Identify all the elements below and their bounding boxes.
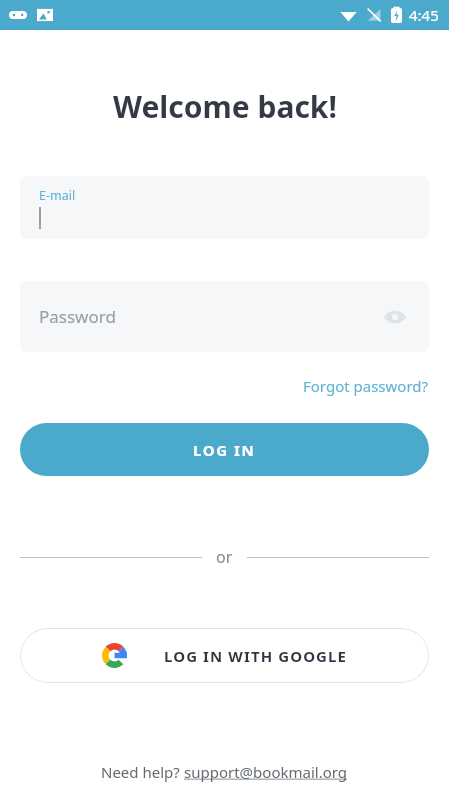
staticText: or [216,546,233,568]
staticText: Forgot password? [303,376,429,396]
staticText: Welcome back! [113,86,337,127]
staticText: E-mail [39,187,76,204]
staticText: 4:45 [409,5,439,25]
button[interactable]: LOG IN [20,423,429,476]
staticText: LOG IN [193,440,256,460]
button[interactable]: E-mail [20,176,429,239]
staticText: Need help? [101,762,184,782]
staticText: support@bookmail.org [184,762,348,782]
staticText: LOG IN WITH GOOGLE [164,646,348,666]
staticText: Password [39,305,116,328]
button[interactable]: LOG IN WITH GOOGLE [20,628,429,683]
button[interactable]: Show password [375,297,415,337]
button[interactable]: Forgot password? [303,376,429,396]
button[interactable]: Password [20,281,429,352]
button[interactable]: support@bookmail.org [184,762,348,782]
